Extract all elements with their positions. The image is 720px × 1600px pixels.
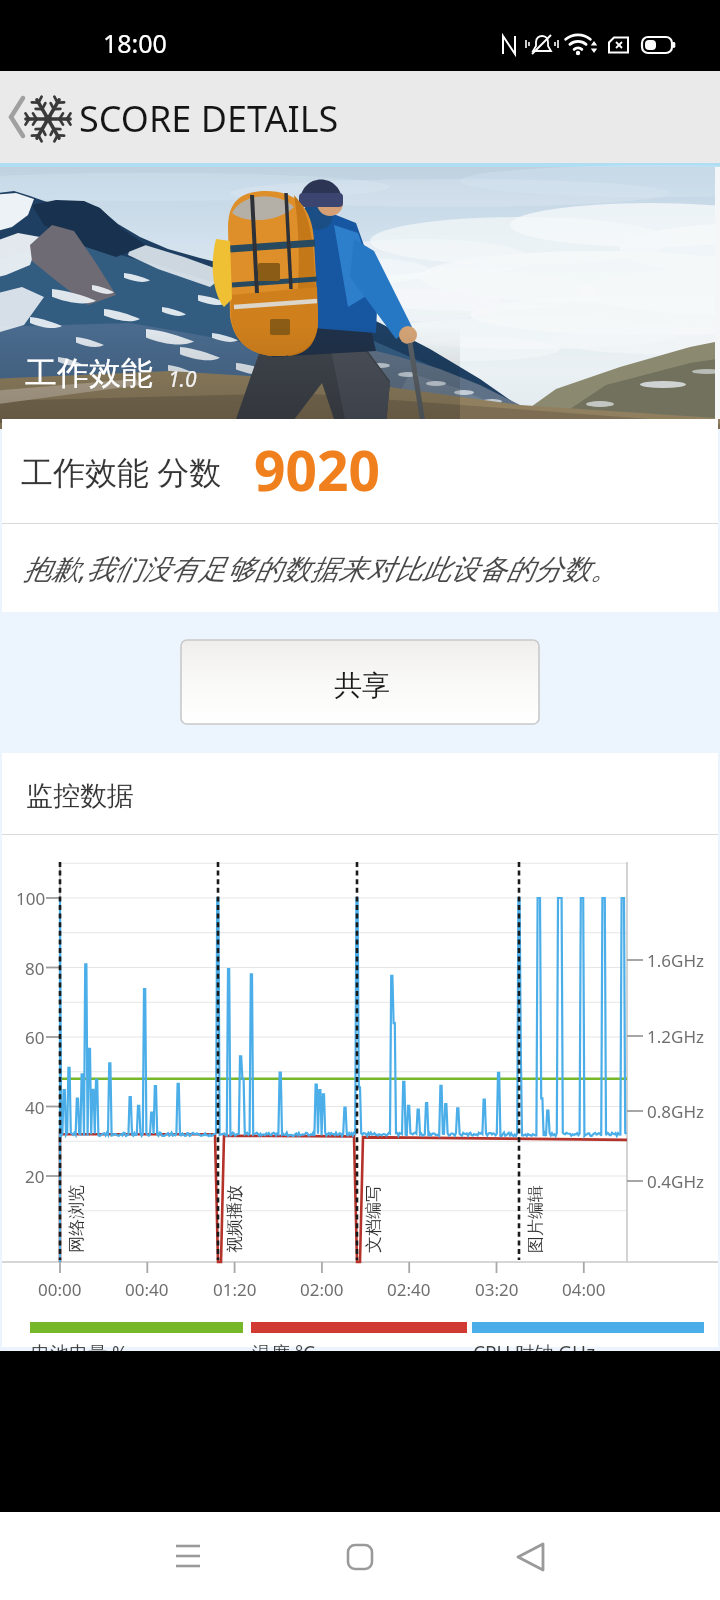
button[interactable]: Back [470,1515,590,1597]
staticText: 电池电量 % [31,1340,128,1366]
staticText: 0.4GHz [647,1170,704,1193]
staticText: 视频播放 [224,1185,245,1253]
staticText: CPU 时钟 GHz [473,1340,596,1366]
staticText: 工作效能 分数 [21,450,222,494]
staticText: 60 [25,1026,45,1049]
staticText: 00:40 [125,1278,169,1301]
staticText: 工作效能 [25,353,153,393]
staticText: 1.6GHz [647,949,704,972]
staticText: SCORE DETAILS [79,94,339,143]
staticText: 共享 [334,668,390,703]
staticText: 文档编写 [363,1185,384,1253]
staticText: 0.8GHz [647,1100,704,1123]
button[interactable]: Recent apps [128,1515,248,1597]
staticText: 图片编辑 [525,1185,546,1253]
staticText: 40 [25,1096,45,1119]
staticText: 18:00 [103,26,167,60]
staticText: 80 [25,957,45,980]
staticText: 02:40 [387,1278,431,1301]
staticText: 03:20 [475,1278,519,1301]
staticText: 抱歉,我们没有足够的数据来对比此设备的分数。 [23,549,619,587]
staticText: 01:20 [213,1278,257,1301]
staticText: 1.2GHz [647,1025,704,1048]
staticText: 100 [16,887,46,910]
button[interactable]: Back to score details [0,71,720,163]
staticText: 网络浏览 [66,1185,87,1253]
staticText: 00:00 [38,1278,82,1301]
staticText: 1.0 [168,365,197,394]
staticText: 04:00 [562,1278,606,1301]
staticText: 02:00 [300,1278,344,1301]
staticText: 温度 °C [252,1340,316,1366]
staticText: 监控数据 [26,779,134,813]
staticText: 20 [25,1165,45,1188]
button[interactable]: Home [300,1515,420,1597]
staticText: 9020 [254,432,380,507]
button[interactable]: 共享 [181,640,539,724]
